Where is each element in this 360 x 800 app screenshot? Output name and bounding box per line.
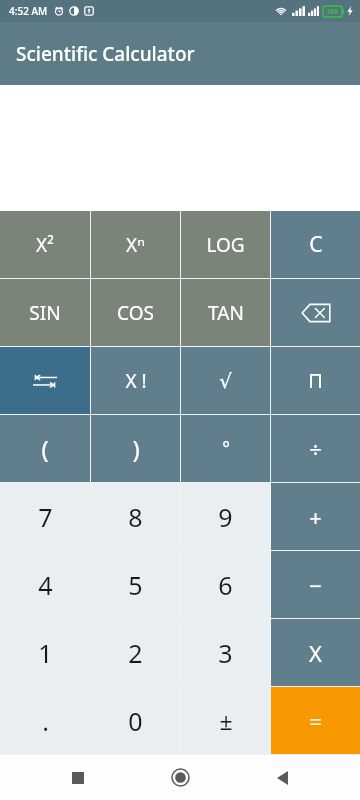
button[interactable]: 9 (181, 483, 270, 550)
staticText: Xⁿ (126, 232, 145, 258)
button[interactable]: √ (181, 347, 270, 414)
button[interactable]: − (271, 551, 360, 618)
staticText: 6 (218, 568, 233, 602)
staticText: 8 (128, 500, 143, 534)
button[interactable]: . (0, 687, 90, 754)
staticText: 4:52 AM (9, 4, 48, 18)
button[interactable]: Swap (0, 347, 90, 414)
staticText: LOG (206, 232, 245, 258)
button[interactable]: Backspace (271, 279, 360, 346)
button[interactable]: Xⁿ (91, 211, 180, 278)
button[interactable]: X (271, 619, 360, 686)
staticText: X ! (125, 368, 147, 394)
button[interactable]: X² (0, 211, 90, 278)
staticText: ÷ (309, 434, 322, 464)
button[interactable]: C (271, 211, 360, 278)
staticText: ° (222, 436, 230, 461)
staticText: C (309, 230, 323, 259)
staticText: X (309, 638, 322, 668)
button[interactable]: = (271, 687, 360, 754)
staticText: ) (132, 432, 140, 465)
button[interactable]: ( (0, 415, 90, 482)
staticText: 7 (38, 500, 53, 534)
button[interactable]: X ! (91, 347, 180, 414)
button[interactable]: Back (258, 755, 306, 800)
button[interactable]: 5 (91, 551, 180, 618)
staticText: 1 (38, 636, 53, 670)
button[interactable]: ± (181, 687, 270, 754)
button[interactable]: LOG (181, 211, 270, 278)
button[interactable]: 0 (91, 687, 180, 754)
button[interactable]: COS (91, 279, 180, 346)
button[interactable]: Home (156, 755, 204, 800)
button[interactable]: 3 (181, 619, 270, 686)
staticText: Π (308, 367, 323, 394)
staticText: 4 (38, 568, 53, 602)
staticText: SIN (29, 300, 61, 326)
button[interactable]: 4 (0, 551, 90, 618)
button[interactable]: ° (181, 415, 270, 482)
button[interactable]: Recents (54, 755, 102, 800)
staticText: 100 (326, 7, 339, 17)
staticText: 9 (218, 500, 233, 534)
staticText: = (309, 706, 322, 736)
staticText: √ (219, 369, 232, 392)
staticText: ± (219, 705, 233, 736)
button[interactable]: 7 (0, 483, 90, 550)
staticText: Scientific Calculator (16, 41, 195, 67)
button[interactable]: + (271, 483, 360, 550)
staticText: − (309, 570, 322, 600)
button[interactable]: 2 (91, 619, 180, 686)
button[interactable]: TAN (181, 279, 270, 346)
button[interactable]: 1 (0, 619, 90, 686)
button[interactable]: Π (271, 347, 360, 414)
staticText: 0 (128, 704, 143, 738)
button[interactable]: SIN (0, 279, 90, 346)
staticText: X² (36, 232, 54, 258)
button[interactable]: ) (91, 415, 180, 482)
staticText: TAN (208, 300, 244, 326)
button[interactable]: 8 (91, 483, 180, 550)
staticText: . (42, 704, 49, 738)
staticText: ( (41, 432, 49, 465)
staticText: COS (117, 300, 154, 326)
staticText: + (309, 502, 322, 532)
staticText: 3 (218, 636, 233, 670)
button[interactable]: 6 (181, 551, 270, 618)
button[interactable]: ÷ (271, 415, 360, 482)
staticText: 5 (128, 568, 143, 602)
staticText: 2 (128, 636, 143, 670)
